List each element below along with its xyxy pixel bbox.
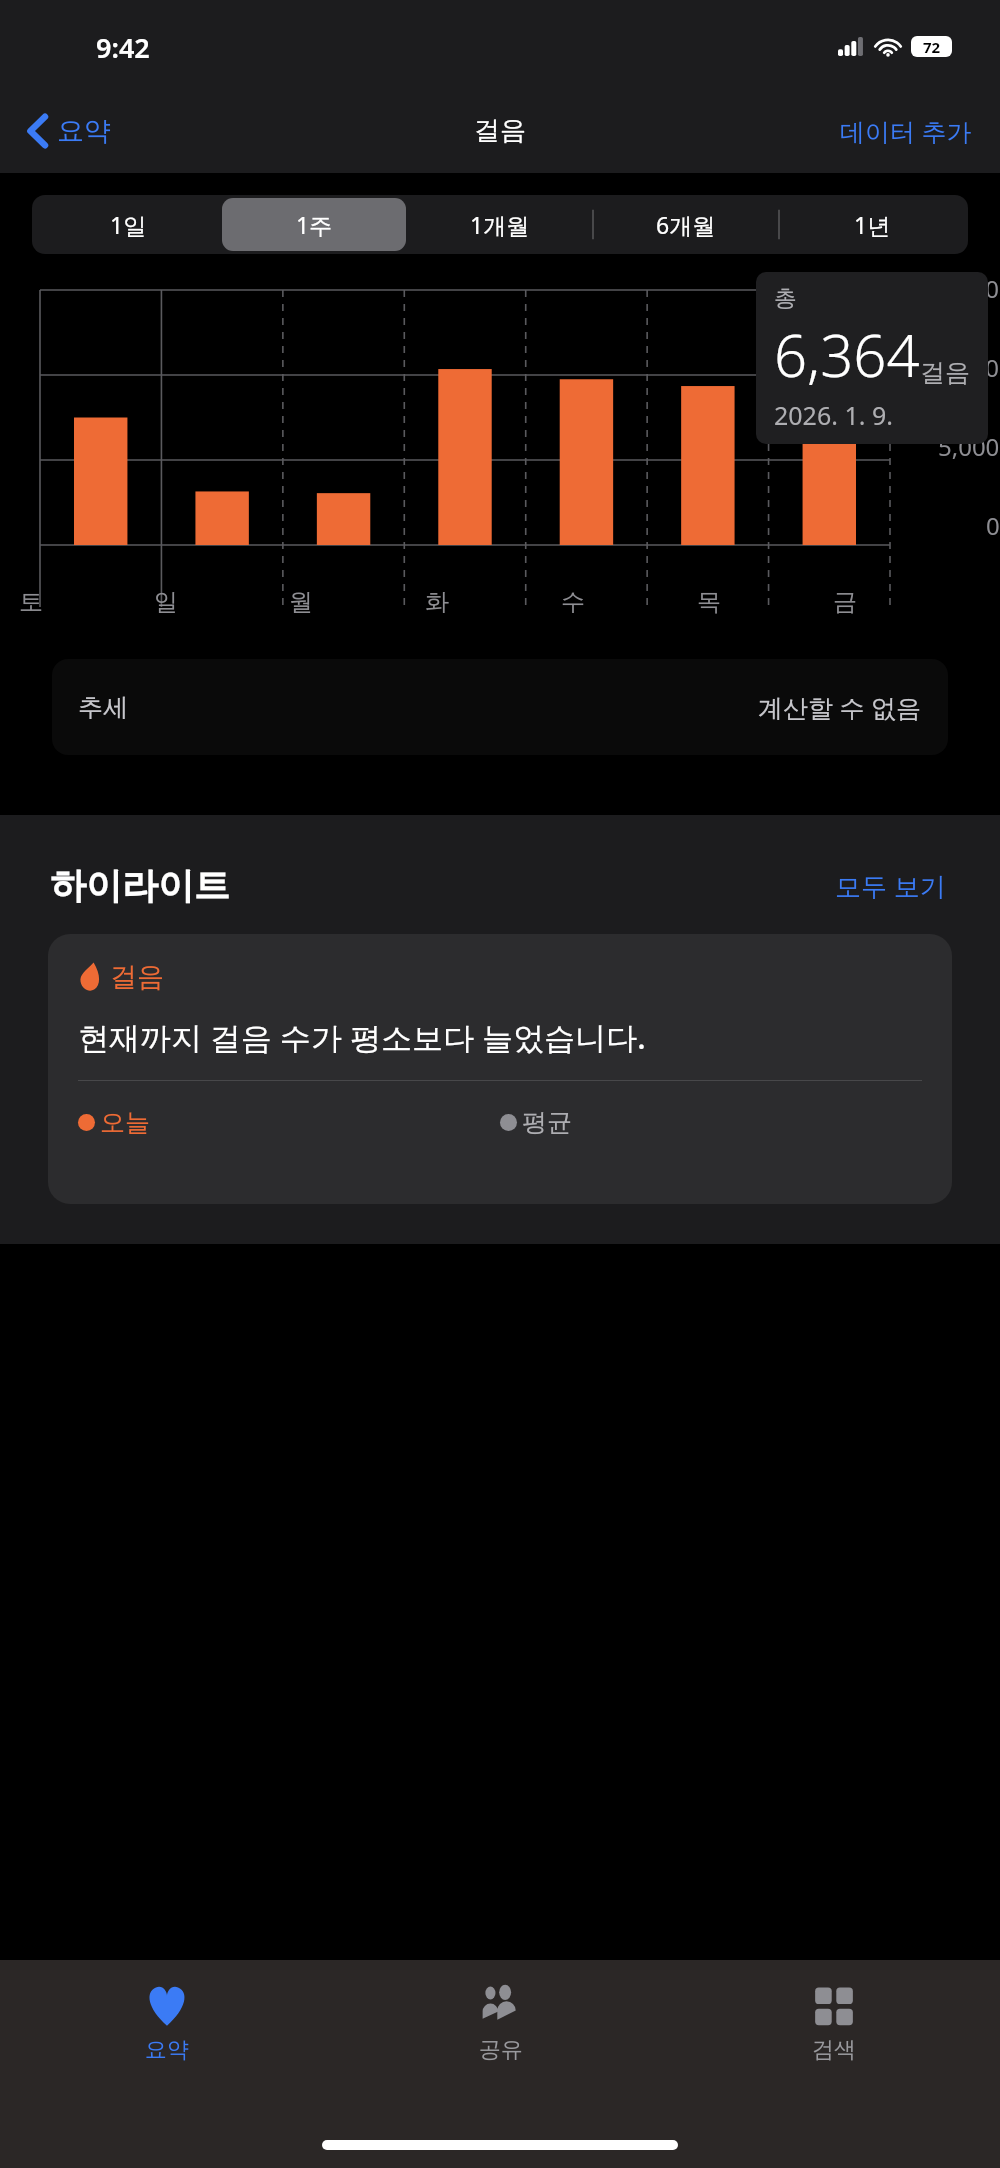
staticText: 월 xyxy=(289,587,313,617)
button[interactable]: 1년 xyxy=(780,198,964,251)
staticText: 1주 xyxy=(296,209,333,240)
staticText: 걸음 xyxy=(920,357,970,388)
staticText: 걸음 xyxy=(110,960,164,994)
staticText: 1일 xyxy=(110,209,147,240)
staticText: 일 xyxy=(154,587,178,617)
staticText: 걸음 xyxy=(474,114,526,147)
staticText: 2026. 1. 9. xyxy=(774,398,893,432)
button[interactable]: 추세 xyxy=(52,659,948,755)
staticText: 10,000 xyxy=(924,351,1000,384)
staticText: 토 xyxy=(19,587,43,617)
staticText: 6개월 xyxy=(656,209,716,240)
staticText: 9:42 xyxy=(96,29,150,66)
button[interactable]: 걸음 xyxy=(48,934,952,1204)
button[interactable]: 검색 xyxy=(667,1972,1000,2090)
staticText: 검색 xyxy=(812,2036,856,2064)
staticText: 5,000 xyxy=(938,430,1000,463)
staticText: 하이라이트 xyxy=(50,863,230,908)
button[interactable]: 요약 xyxy=(22,106,117,156)
staticText: 15,000 xyxy=(924,272,1000,305)
staticText: 1년 xyxy=(854,209,891,240)
button[interactable]: 요약 xyxy=(0,1972,334,2090)
staticText: 요약 xyxy=(145,2036,189,2064)
staticText: 6,364 xyxy=(774,315,920,394)
staticText: 1개월 xyxy=(470,209,530,240)
staticText: 금 xyxy=(833,587,857,617)
button[interactable]: 공유 xyxy=(334,1972,667,2090)
button[interactable]: 1개월 xyxy=(408,198,592,251)
staticText: 추세 xyxy=(78,692,128,723)
button[interactable]: 1주 xyxy=(222,198,406,251)
button[interactable]: 데이터 추가 xyxy=(834,106,978,156)
staticText: 공유 xyxy=(479,2036,523,2064)
other: 공유 xyxy=(478,1982,524,2028)
staticText: 평균 xyxy=(522,1107,572,1138)
staticText: 72 xyxy=(923,37,941,57)
button[interactable]: 1일 xyxy=(36,198,220,251)
staticText: 오늘 xyxy=(100,1107,150,1138)
button[interactable]: 6개월 xyxy=(594,198,778,251)
button[interactable]: 모두 보기 xyxy=(831,864,950,908)
staticText: 현재까지 걸음 수가 평소보다 늘었습니다. xyxy=(78,1016,646,1058)
staticText: 목 xyxy=(697,587,721,617)
staticText: 수 xyxy=(561,587,585,617)
other: 요약 xyxy=(144,1982,190,2028)
staticText: 0 xyxy=(986,509,1000,542)
staticText: 화 xyxy=(425,587,449,617)
staticText: 계산할 수 없음 xyxy=(758,690,922,724)
staticText: 총 xyxy=(774,284,797,313)
other: 검색 xyxy=(811,1982,857,2028)
staticText: 요약 xyxy=(57,114,111,148)
